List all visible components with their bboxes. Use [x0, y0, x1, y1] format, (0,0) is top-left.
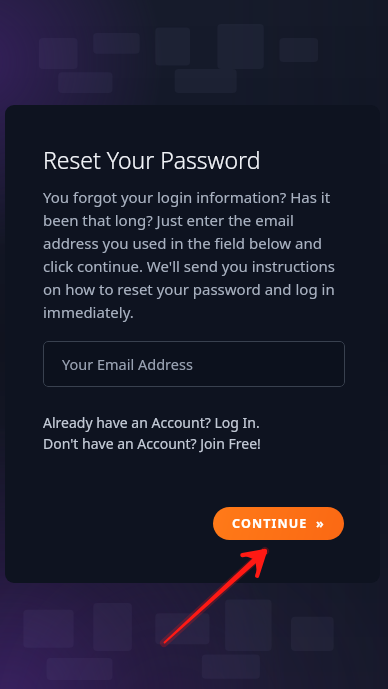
staticText: You forgot your login information? Has i…: [43, 187, 350, 323]
staticText: Your Email Address: [62, 354, 193, 374]
other: Annotation arrow pointing to Continue: [0, 0, 388, 689]
button[interactable]: Your Email Address: [43, 341, 345, 387]
staticText: Already have an Account? Log In.: [43, 413, 260, 432]
button[interactable]: Don't have an Account? Join Free!: [43, 434, 261, 453]
staticText: Don't have an Account? Join Free!: [43, 434, 261, 453]
staticText: CONTINUE »: [232, 515, 325, 532]
button[interactable]: Already have an Account? Log In.: [43, 413, 260, 432]
button[interactable]: CONTINUE »: [213, 507, 344, 540]
staticText: Reset Your Password: [43, 144, 261, 175]
